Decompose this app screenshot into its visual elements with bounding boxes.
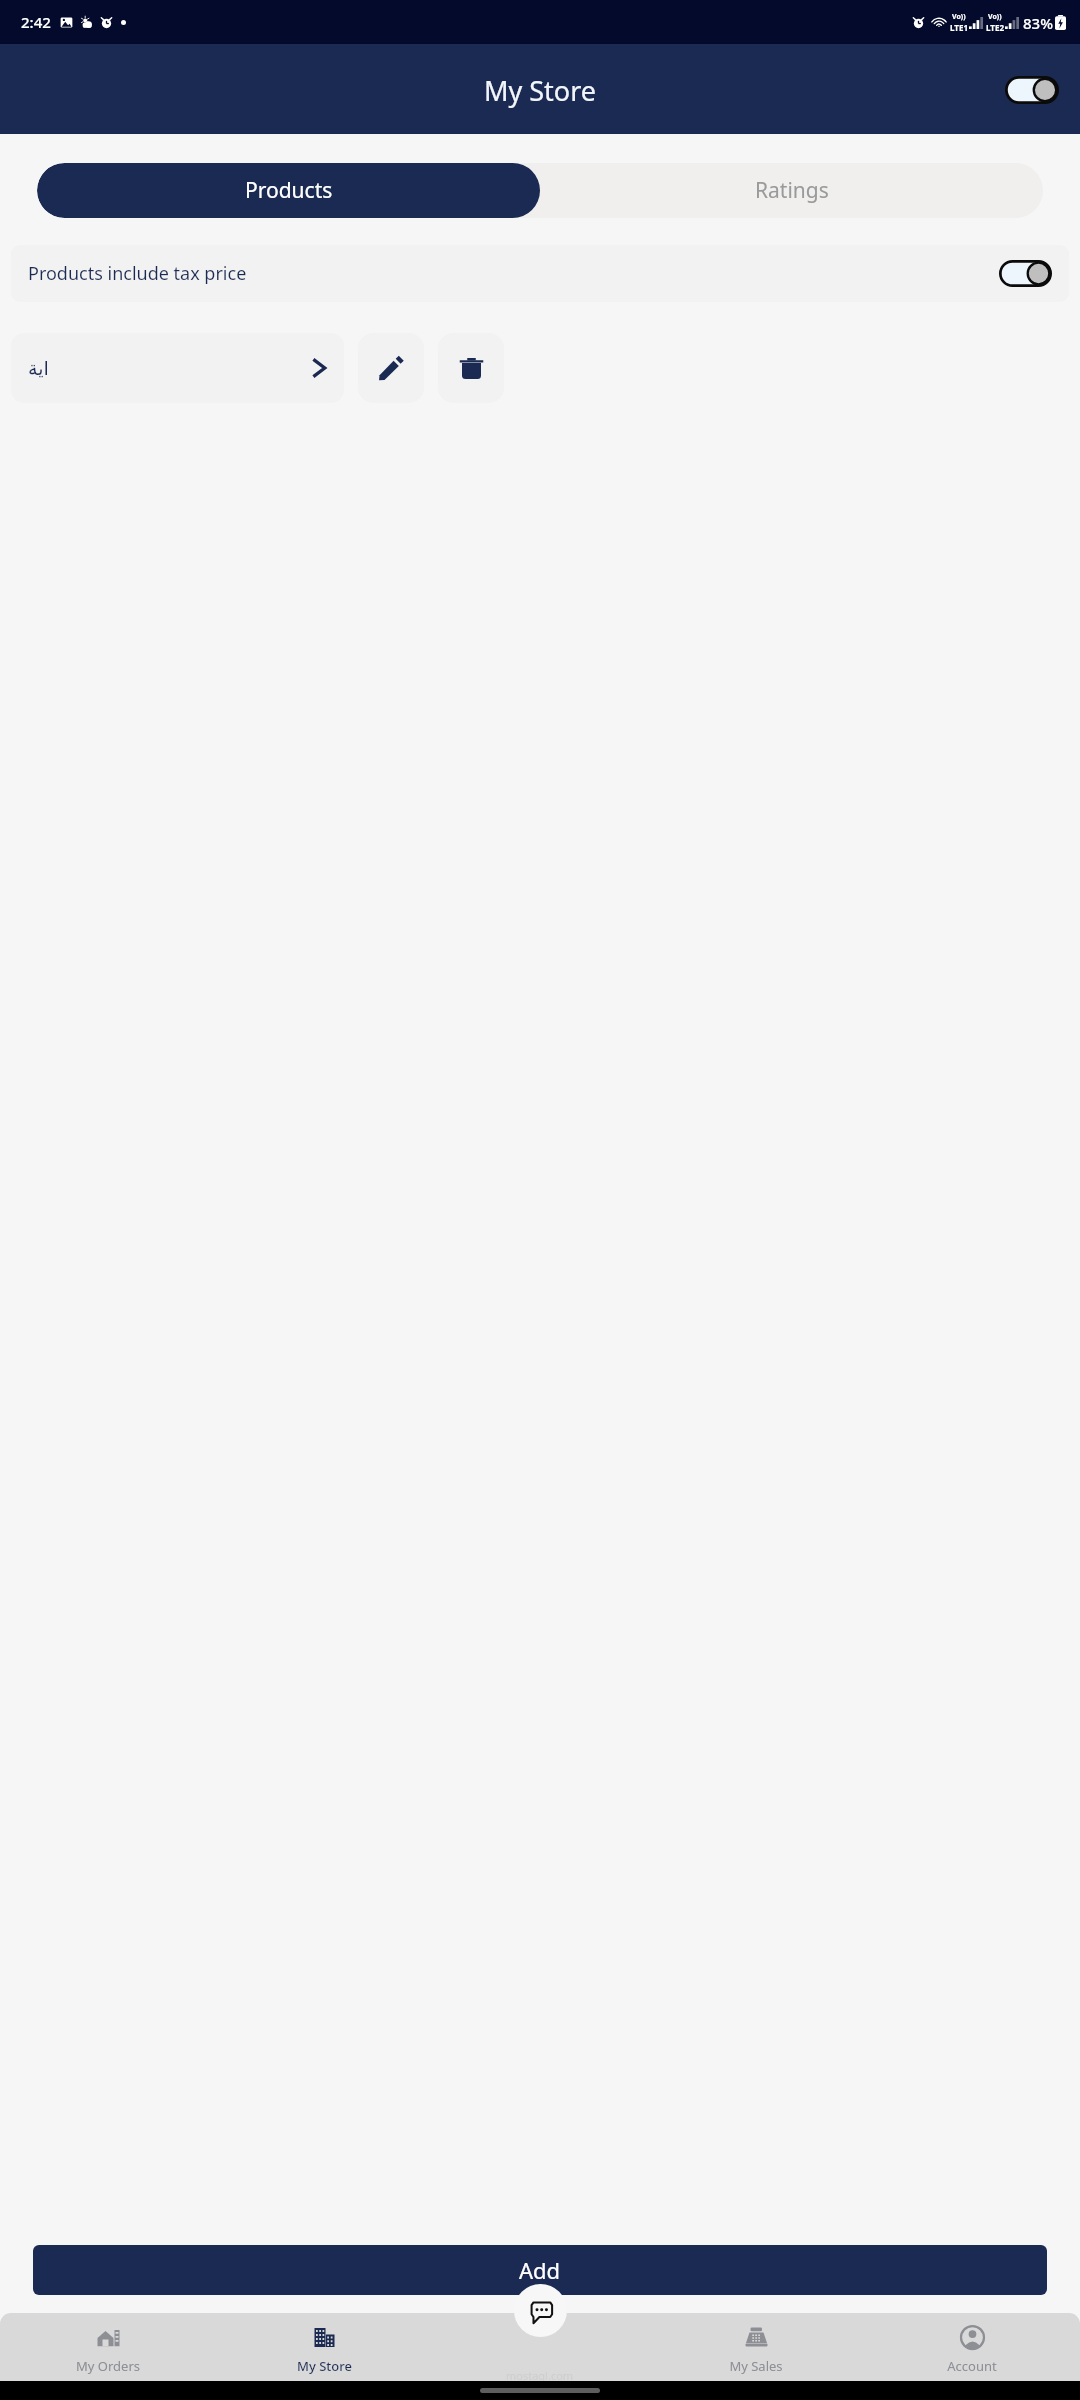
staticText: Vo)) bbox=[988, 12, 1002, 22]
staticText: mostaql.com bbox=[506, 2368, 574, 2383]
staticText: Ratings bbox=[755, 176, 829, 205]
staticText: Products include tax price bbox=[28, 261, 247, 286]
staticText: My Store bbox=[297, 2357, 352, 2375]
staticText: My Store bbox=[484, 72, 597, 109]
staticText: 2:42 bbox=[21, 12, 51, 32]
staticText: LTE2 bbox=[986, 22, 1004, 33]
button[interactable]: Products bbox=[37, 163, 540, 218]
button[interactable]: Edit bbox=[358, 333, 424, 403]
staticText: My Sales bbox=[729, 2357, 783, 2375]
staticText: Vo)) bbox=[952, 12, 966, 22]
staticText: Account bbox=[947, 2357, 997, 2375]
staticText: Products bbox=[245, 176, 333, 205]
staticText: My Orders bbox=[76, 2357, 140, 2375]
button[interactable]: Products include tax price bbox=[11, 245, 1069, 302]
staticText: اية bbox=[28, 357, 49, 379]
button[interactable]: Ratings bbox=[540, 163, 1043, 218]
button[interactable]: My Orders bbox=[0, 2313, 216, 2387]
button[interactable]: Store status toggle bbox=[1005, 76, 1059, 104]
button[interactable]: Chat bbox=[514, 2284, 567, 2337]
button[interactable]: Account bbox=[864, 2313, 1080, 2387]
button[interactable]: اية bbox=[11, 333, 344, 403]
staticText: Add bbox=[519, 2255, 561, 2285]
button[interactable]: Delete bbox=[438, 333, 504, 403]
button[interactable]: My Store bbox=[216, 2313, 432, 2387]
button[interactable]: Add bbox=[33, 2245, 1047, 2295]
button[interactable]: My Sales bbox=[648, 2313, 864, 2387]
staticText: 83% bbox=[1023, 13, 1053, 33]
staticText: LTE1 bbox=[950, 22, 968, 33]
